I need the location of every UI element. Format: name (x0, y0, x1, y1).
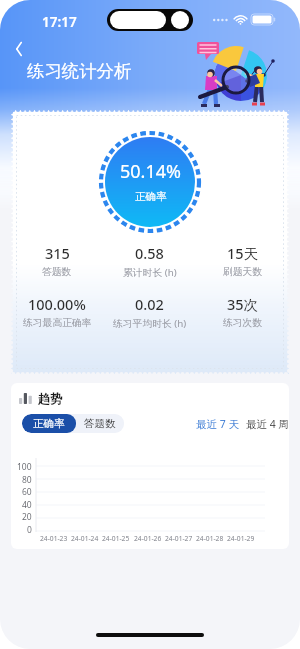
staticText: 最近 7 天 (196, 417, 239, 431)
staticText: 50.14% (120, 159, 181, 184)
staticText: 24-01-28 (196, 534, 224, 543)
staticText: 80 (22, 474, 32, 486)
staticText: 练习平均时长 (h) (113, 317, 187, 330)
button[interactable]: 最近 7 天 (194, 415, 241, 433)
staticText: 答题数 (84, 417, 116, 430)
staticText: 17:17 (42, 13, 77, 31)
staticText: 0 (27, 524, 32, 536)
staticText: 40 (22, 499, 32, 511)
staticText: 正确率 (33, 417, 65, 430)
staticText: 315 (45, 243, 70, 263)
staticText: 24-01-27 (165, 534, 193, 543)
staticText: 15天 (227, 243, 259, 263)
staticText: 24-01-25 (102, 534, 130, 543)
staticText: 24-01-29 (227, 534, 255, 543)
staticText: 答题数 (42, 266, 72, 278)
staticText: 0.58 (135, 243, 164, 263)
staticText: 刷题天数 (223, 266, 263, 278)
staticText: 100.00% (28, 294, 86, 314)
button[interactable]: Back (6, 37, 30, 61)
staticText: 最近 4 周 (246, 417, 289, 431)
staticText: 练习统计分析 (27, 60, 132, 82)
staticText: 累计时长 (h) (123, 266, 177, 279)
staticText: 20 (22, 511, 32, 523)
staticText: 24-01-23 (40, 534, 68, 543)
staticText: 35次 (227, 294, 259, 314)
button[interactable]: 正确率 (22, 414, 76, 433)
staticText: 60 (22, 486, 32, 498)
staticText: 练习次数 (223, 317, 263, 329)
button[interactable]: 答题数 (76, 414, 124, 433)
staticText: 趋势 (38, 391, 62, 406)
staticText: 100 (17, 461, 32, 473)
staticText: 0.02 (135, 294, 164, 314)
staticText: 24-01-26 (134, 534, 162, 543)
button[interactable]: 最近 4 周 (244, 415, 289, 433)
staticText: 正确率 (135, 190, 167, 203)
staticText: 练习最高正确率 (23, 317, 92, 329)
staticText: 24-01-24 (71, 534, 99, 543)
